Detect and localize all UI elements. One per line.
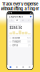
staticText: Transport: [12, 41, 21, 43]
staticText: W: [16, 20, 18, 22]
button[interactable]: Groceries: [8, 36, 32, 40]
staticText: Track every expense: [2, 1, 38, 6]
staticText: 42.10: [27, 37, 31, 39]
staticText: Y: [28, 20, 29, 22]
button[interactable]: Wallet: [20, 65, 26, 69]
button[interactable]: Y: [26, 20, 31, 22]
staticText: Groceries: [12, 37, 20, 39]
staticText: without lifting a finger: [0, 6, 39, 11]
staticText: Spent this week: [9, 24, 21, 26]
button[interactable]: Settings: [26, 65, 33, 69]
button[interactable]: Transport: [8, 40, 32, 44]
button[interactable]: Insights: [14, 65, 20, 69]
staticText: 12.00: [27, 41, 31, 43]
button[interactable]: D: [9, 20, 14, 22]
staticText: $284.50: [9, 26, 22, 30]
button[interactable]: Home: [7, 65, 14, 69]
staticText: M: [22, 20, 24, 22]
button[interactable]: Add expense: [30, 16, 31, 17]
button[interactable]: M: [20, 20, 26, 22]
staticText: Coffee: [12, 44, 18, 47]
button[interactable]: W: [14, 20, 20, 22]
button[interactable]: Coffee: [8, 44, 32, 47]
staticText: D: [11, 20, 12, 22]
staticText: 9:41: [8, 12, 12, 14]
staticText: Expenses: [8, 15, 22, 18]
